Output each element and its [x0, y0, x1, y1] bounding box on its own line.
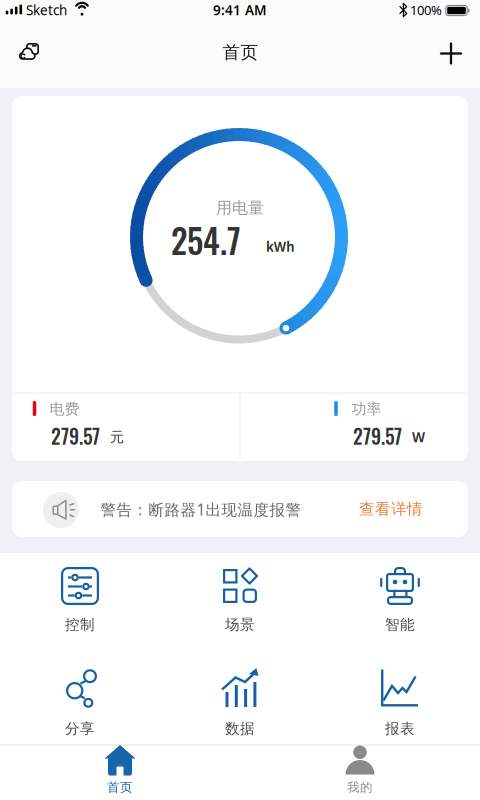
staticText: 9:41 AM — [213, 1, 267, 19]
button[interactable]: 报表 — [320, 666, 480, 740]
staticText: Sketch — [26, 1, 67, 19]
staticText: 首页 — [222, 41, 258, 63]
staticText: 用电量 — [216, 198, 264, 218]
button[interactable]: 分享 — [0, 666, 160, 740]
button[interactable]: 控制 — [0, 564, 160, 636]
button[interactable] — [17, 43, 39, 62]
staticText: 控制 — [65, 615, 95, 634]
staticText: 254.7 — [171, 215, 241, 264]
staticText: 警告：断路器1出现温度报警 — [100, 499, 301, 520]
staticText: 查看详情 — [359, 499, 423, 519]
staticText: W — [412, 428, 425, 446]
button[interactable]: 首页 — [0, 745, 240, 800]
staticText: kWh — [264, 236, 296, 256]
staticText: 场景 — [225, 615, 255, 634]
staticText: 元 — [110, 428, 124, 446]
staticText: 数据 — [225, 719, 255, 738]
staticText: 电费 — [49, 400, 79, 418]
button[interactable]: 警告：断路器1出现温度报警 — [12, 481, 468, 537]
button[interactable] — [438, 40, 464, 66]
button[interactable]: 数据 — [160, 666, 320, 740]
staticText: 100% — [410, 1, 442, 19]
staticText: 智能 — [385, 615, 415, 634]
staticText: 功率 — [351, 400, 381, 418]
staticText: 279.57 — [353, 422, 402, 450]
staticText: 279.57 — [51, 422, 100, 450]
staticText: 我的 — [347, 779, 373, 795]
staticText: 首页 — [107, 779, 133, 795]
button[interactable]: 场景 — [160, 564, 320, 636]
button[interactable]: 智能 — [320, 564, 480, 636]
staticText: 报表 — [385, 719, 415, 738]
button[interactable]: 我的 — [240, 745, 480, 800]
staticText: 分享 — [65, 719, 95, 738]
